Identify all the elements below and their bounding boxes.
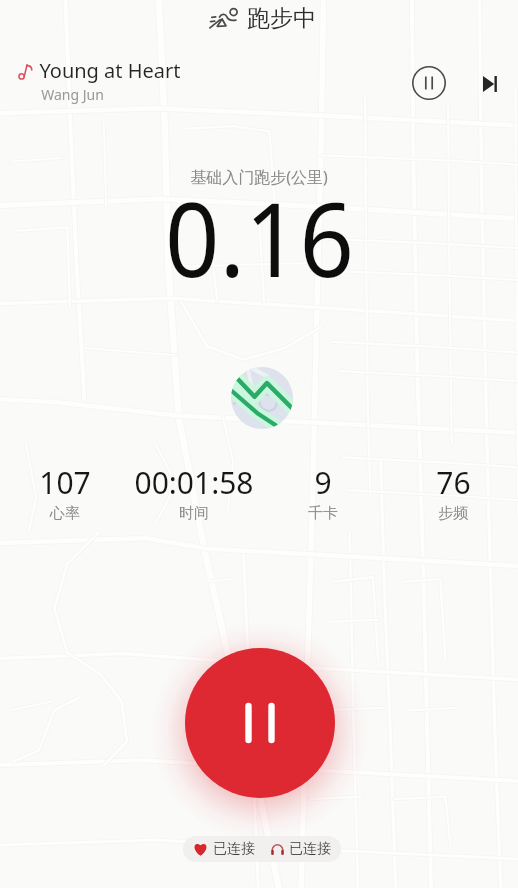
staticText: 时间 <box>179 504 209 523</box>
staticText: 已连接 <box>213 840 255 858</box>
staticText: Wang Jun <box>41 85 104 104</box>
staticText: 千卡 <box>308 504 338 523</box>
staticText: 心率 <box>50 504 80 523</box>
button[interactable]: Next track <box>474 68 506 100</box>
staticText: 已连接 <box>289 840 331 858</box>
staticText: Young at Heart <box>39 57 181 84</box>
button[interactable]: Pause music <box>410 64 448 102</box>
staticText: 0.16 <box>165 167 354 307</box>
staticText: 步频 <box>438 504 468 523</box>
staticText: 00:01:58 <box>134 462 254 503</box>
button[interactable]: Pause run <box>185 648 335 798</box>
staticText: 76 <box>436 462 471 503</box>
staticText: 9 <box>314 462 332 503</box>
staticText: 跑步中 <box>247 4 316 32</box>
button[interactable]: 已连接 <box>183 836 341 862</box>
staticText: 107 <box>39 462 91 503</box>
staticText: 基础入门跑步(公里) <box>190 166 328 188</box>
